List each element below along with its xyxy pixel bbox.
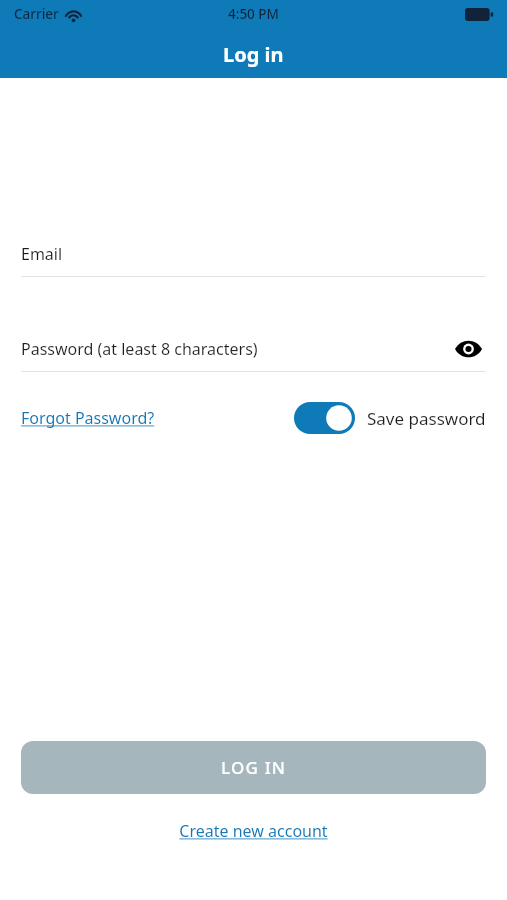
staticText: Carrier [14, 5, 59, 23]
staticText: Create new account [179, 820, 328, 842]
staticText: Email [21, 243, 63, 265]
button[interactable]: Forgot Password? [21, 403, 155, 433]
staticText: Forgot Password? [21, 407, 155, 429]
button[interactable]: Save password [294, 402, 486, 434]
staticText: LOG IN [221, 756, 287, 779]
button[interactable]: LOG IN [21, 741, 486, 794]
button[interactable]: Show password [450, 333, 486, 365]
staticText: Save password [367, 407, 486, 430]
button[interactable]: Create new account [173, 814, 334, 848]
staticText: Password (at least 8 characters) [21, 338, 258, 360]
staticText: 4:50 PM [228, 5, 279, 23]
staticText: Log in [223, 41, 284, 68]
